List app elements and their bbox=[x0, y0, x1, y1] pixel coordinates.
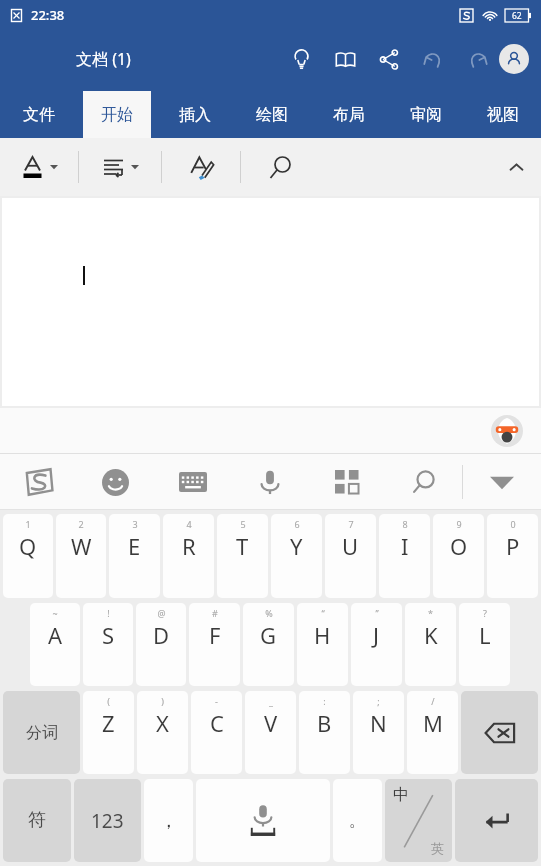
staticText: 开始 bbox=[101, 105, 133, 125]
button[interactable]: Comma bbox=[144, 779, 193, 862]
button[interactable]: ) bbox=[137, 691, 188, 774]
button[interactable]: 7 bbox=[325, 514, 376, 598]
staticText: T bbox=[236, 531, 249, 561]
staticText: _ bbox=[269, 695, 273, 707]
button[interactable]: 符 bbox=[3, 779, 71, 862]
button[interactable]: ? bbox=[459, 603, 510, 686]
staticText: 0 bbox=[510, 518, 516, 530]
staticText: 8 bbox=[402, 518, 408, 530]
button[interactable]: 插入 bbox=[156, 91, 233, 138]
button[interactable]: Enter bbox=[455, 779, 538, 862]
button[interactable]: @ bbox=[136, 603, 186, 686]
button[interactable]: ; bbox=[353, 691, 404, 774]
staticText: ! bbox=[107, 607, 110, 619]
button[interactable]: 分词 bbox=[3, 691, 80, 774]
staticText: 1 bbox=[25, 518, 31, 530]
button[interactable]: 9 bbox=[433, 514, 484, 598]
button[interactable]: Chinese English toggle bbox=[385, 779, 452, 862]
staticText: : bbox=[323, 695, 326, 707]
button[interactable]: ” bbox=[351, 603, 402, 686]
staticText: 分词 bbox=[26, 723, 58, 743]
staticText: 3 bbox=[132, 518, 138, 530]
button[interactable]: Collapse ribbon bbox=[491, 142, 541, 192]
button[interactable]: More bbox=[308, 454, 385, 510]
button[interactable]: Undo bbox=[411, 37, 455, 81]
staticText: I bbox=[401, 531, 409, 561]
button[interactable]: : bbox=[299, 691, 350, 774]
button[interactable]: ~ bbox=[30, 603, 80, 686]
button[interactable]: Redo bbox=[455, 37, 499, 81]
button[interactable]: Emoji bbox=[77, 454, 154, 510]
button[interactable]: 0 bbox=[487, 514, 538, 598]
staticText: 。 bbox=[349, 810, 366, 831]
button[interactable]: 123 bbox=[74, 779, 141, 862]
staticText: 绘图 bbox=[256, 105, 288, 125]
staticText: “ bbox=[321, 607, 325, 619]
button[interactable]: Format painter bbox=[162, 138, 240, 196]
button[interactable]: Paragraph bbox=[79, 138, 161, 196]
button[interactable]: 绘图 bbox=[233, 91, 310, 138]
button[interactable]: Backspace bbox=[461, 691, 538, 774]
button[interactable]: * bbox=[405, 603, 456, 686]
button[interactable]: 审阅 bbox=[387, 91, 464, 138]
button[interactable]: Font color bbox=[0, 138, 78, 196]
staticText: L bbox=[479, 620, 491, 650]
button[interactable]: _ bbox=[245, 691, 296, 774]
button[interactable]: 视图 bbox=[464, 91, 541, 138]
button[interactable]: 1 bbox=[3, 514, 53, 598]
staticText: F bbox=[209, 620, 221, 650]
staticText: 审阅 bbox=[410, 105, 442, 125]
button[interactable]: Sogou bbox=[0, 454, 77, 510]
button[interactable]: 8 bbox=[379, 514, 430, 598]
button[interactable]: Keyboard layout bbox=[154, 454, 231, 510]
button[interactable]: 3 bbox=[109, 514, 160, 598]
button[interactable]: Account bbox=[499, 44, 529, 74]
staticText: A bbox=[48, 620, 63, 650]
button[interactable]: / bbox=[407, 691, 458, 774]
staticText: X bbox=[156, 708, 169, 738]
staticText: Q bbox=[19, 531, 37, 561]
staticText: 中 bbox=[393, 785, 409, 805]
staticText: 6 bbox=[294, 518, 300, 530]
staticText: 123 bbox=[91, 808, 124, 834]
button[interactable]: Search bbox=[241, 138, 319, 196]
button[interactable]: Assistant bbox=[490, 414, 524, 448]
staticText: O bbox=[450, 531, 468, 561]
staticText: V bbox=[264, 708, 278, 738]
staticText: * bbox=[428, 607, 433, 619]
button[interactable]: “ bbox=[297, 603, 348, 686]
staticText: 插入 bbox=[179, 105, 211, 125]
staticText: N bbox=[370, 708, 387, 738]
button[interactable]: Voice input bbox=[231, 454, 308, 510]
button[interactable]: Space bbox=[196, 779, 330, 862]
staticText: 符 bbox=[28, 809, 46, 832]
button[interactable]: - bbox=[191, 691, 242, 774]
button[interactable]: % bbox=[243, 603, 294, 686]
staticText: W bbox=[71, 531, 92, 561]
button[interactable]: 4 bbox=[163, 514, 214, 598]
staticText: @ bbox=[157, 607, 166, 619]
button[interactable]: 6 bbox=[271, 514, 322, 598]
staticText: ” bbox=[375, 607, 379, 619]
button[interactable]: Search bbox=[385, 454, 462, 510]
button[interactable]: Tell me bbox=[279, 37, 323, 81]
staticText: Z bbox=[102, 708, 115, 738]
button[interactable]: 文件 bbox=[0, 91, 78, 138]
button[interactable]: ! bbox=[83, 603, 133, 686]
staticText: 5 bbox=[240, 518, 246, 530]
button[interactable]: 布局 bbox=[310, 91, 387, 138]
button[interactable]: # bbox=[189, 603, 240, 686]
staticText: 22:38 bbox=[31, 6, 65, 24]
button[interactable]: 2 bbox=[56, 514, 106, 598]
button[interactable]: 5 bbox=[217, 514, 268, 598]
staticText: 9 bbox=[456, 518, 462, 530]
staticText: E bbox=[128, 531, 141, 561]
button[interactable]: Period bbox=[333, 779, 382, 862]
button[interactable]: Hide keyboard bbox=[463, 454, 541, 510]
staticText: Y bbox=[290, 531, 303, 561]
button[interactable]: Share bbox=[367, 37, 411, 81]
staticText: K bbox=[424, 620, 438, 650]
button[interactable]: 开始 bbox=[83, 91, 151, 138]
button[interactable]: ( bbox=[83, 691, 134, 774]
button[interactable]: Read mode bbox=[323, 37, 367, 81]
